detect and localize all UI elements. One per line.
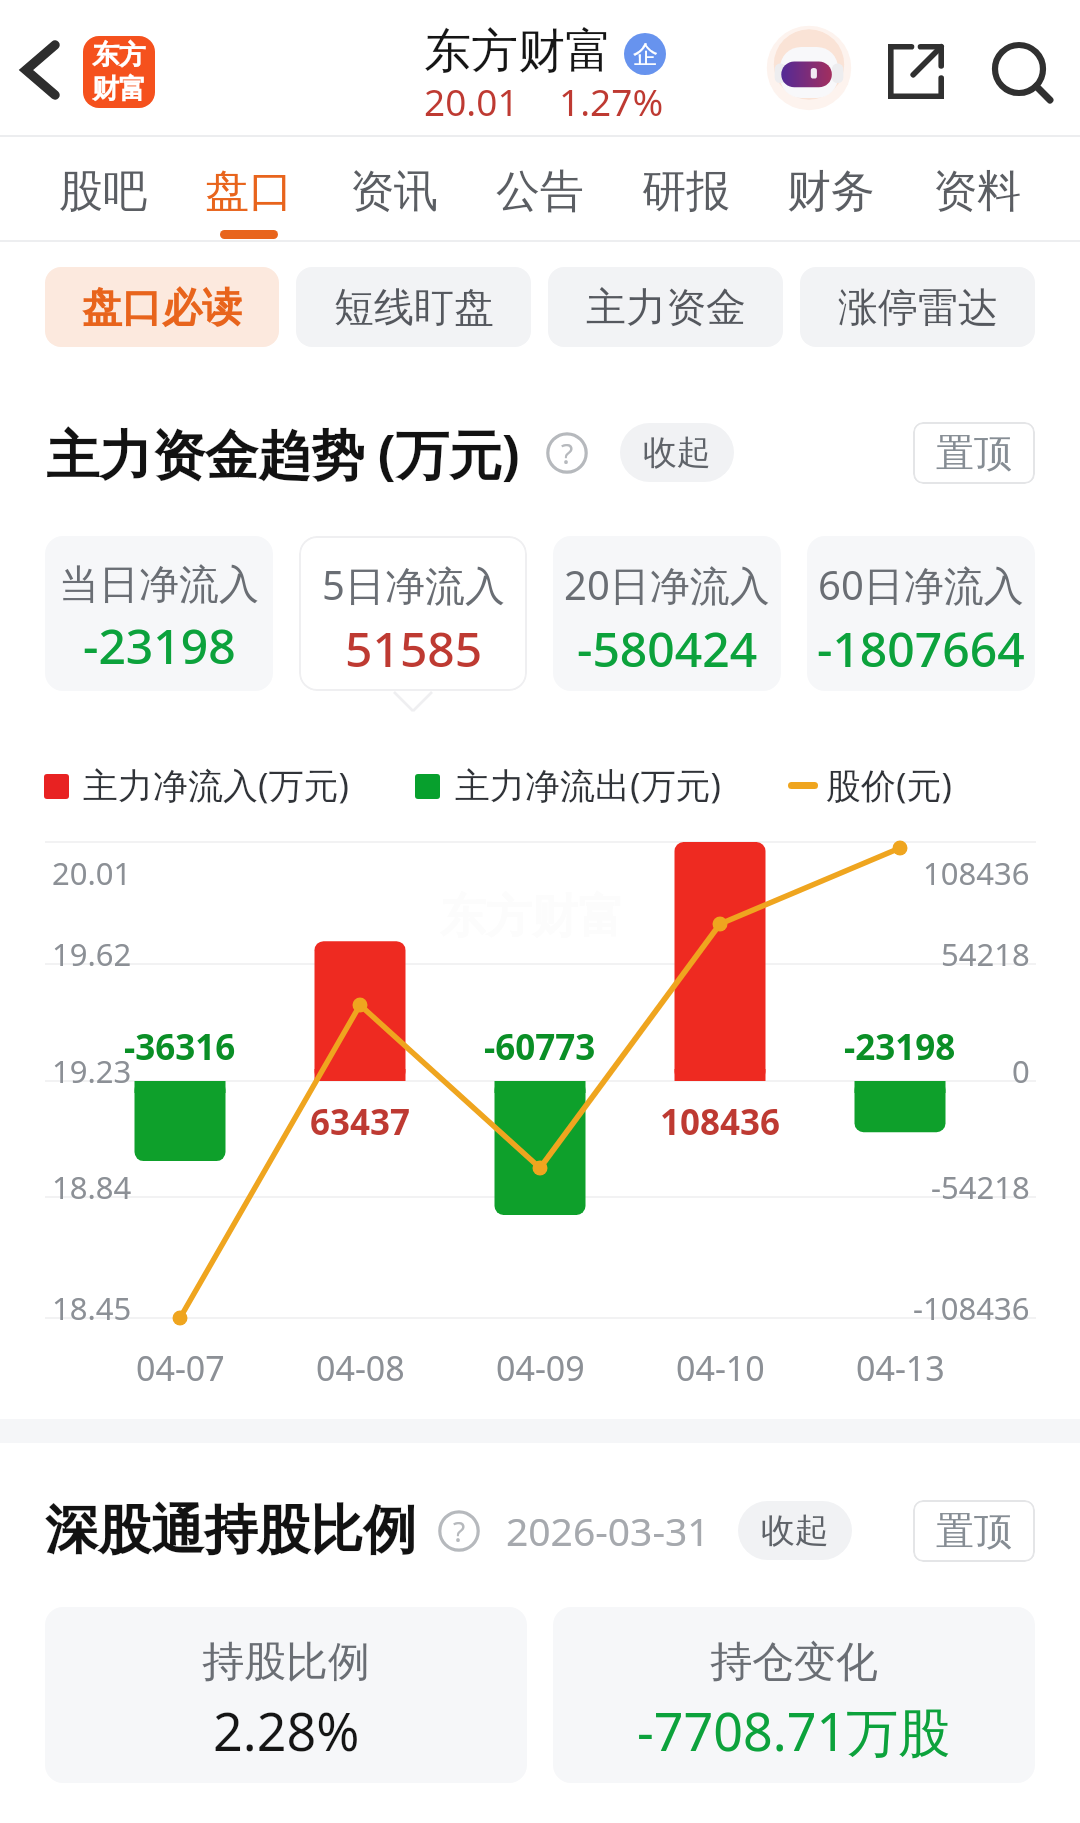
staticText: 19.62	[52, 933, 132, 975]
staticText: 63437	[310, 1098, 411, 1146]
staticText: 108436	[923, 852, 1030, 894]
button[interactable]: Share	[888, 44, 944, 99]
staticText: 企	[633, 39, 658, 70]
button[interactable]: 主力资金	[548, 267, 783, 347]
staticText: 20日净流入	[564, 557, 770, 612]
button[interactable]: 盘口必读	[45, 267, 279, 347]
staticText: -60773	[484, 1023, 596, 1071]
staticText: 公告	[496, 164, 584, 219]
button[interactable]: 财务	[778, 137, 884, 242]
staticText: 04-10	[676, 1345, 765, 1391]
staticText: 置顶	[936, 429, 1012, 477]
staticText: 0	[1012, 1050, 1030, 1092]
staticText: 04-13	[856, 1345, 945, 1391]
staticText: 持仓变化	[710, 1636, 878, 1689]
staticText: 收起	[761, 1509, 829, 1552]
button[interactable]: Help	[438, 1510, 480, 1552]
button[interactable]: 持仓变化	[553, 1607, 1035, 1783]
staticText: -108436	[913, 1287, 1030, 1329]
staticText: 资料	[933, 164, 1021, 219]
button[interactable]: 置顶	[913, 1500, 1035, 1562]
staticText: 研报	[642, 164, 730, 219]
staticText: 东方财富	[424, 22, 612, 81]
staticText: 持股比例	[202, 1636, 370, 1689]
button[interactable]: 资料	[924, 137, 1030, 242]
staticText: 东方	[92, 38, 146, 72]
button[interactable]: East Money logo	[83, 36, 155, 108]
staticText: 置顶	[936, 1507, 1012, 1555]
staticText: 财务	[787, 164, 875, 219]
staticText: 主力资金	[586, 282, 746, 332]
button[interactable]: 置顶	[913, 422, 1035, 484]
staticText: -23198	[83, 613, 236, 678]
button[interactable]: 研报	[633, 137, 739, 242]
button[interactable]: 5日净流入	[299, 536, 527, 691]
button[interactable]: 盘口	[196, 137, 302, 242]
staticText: -7708.71万股	[637, 1695, 951, 1766]
staticText: 20.01	[52, 852, 132, 894]
button[interactable]: 涨停雷达	[800, 267, 1035, 347]
staticText: 主力净流出(万元)	[455, 761, 722, 809]
staticText: 04-08	[316, 1345, 405, 1391]
staticText: 1.27%	[559, 76, 664, 126]
staticText: 主力净流入(万元)	[83, 761, 350, 809]
staticText: 当日净流入	[59, 559, 259, 609]
staticText: -1807664	[817, 616, 1025, 681]
button[interactable]: 20日净流入	[553, 536, 781, 691]
staticText: 涨停雷达	[838, 282, 998, 332]
staticText: 04-07	[136, 1345, 225, 1391]
staticText: 资讯	[350, 164, 438, 219]
staticText: -54218	[931, 1166, 1030, 1208]
staticText: ?	[561, 434, 574, 472]
button[interactable]: 收起	[738, 1501, 852, 1560]
staticText: 短线盯盘	[334, 282, 494, 332]
staticText: 股吧	[59, 164, 147, 219]
staticText: 108436	[660, 1098, 781, 1146]
staticText: 2.28%	[213, 1695, 360, 1766]
staticText: 54218	[941, 933, 1030, 975]
staticText: 18.84	[52, 1166, 132, 1208]
staticText: 深股通持股比例	[45, 1497, 416, 1564]
staticText: 收起	[643, 431, 711, 474]
button[interactable]: 当日净流入	[45, 536, 273, 691]
staticText: 盘口必读	[82, 282, 242, 332]
staticText: 20.01	[424, 76, 519, 126]
staticText: 财富	[92, 72, 146, 106]
button[interactable]: 持股比例	[45, 1607, 527, 1783]
staticText: 18.45	[52, 1287, 132, 1329]
button[interactable]: AI assistant	[765, 24, 853, 112]
staticText: 5日净流入	[322, 557, 505, 612]
staticText: 主力资金趋势 (万元)	[46, 417, 520, 489]
staticText: -23198	[844, 1023, 956, 1071]
staticText: 04-09	[496, 1345, 585, 1391]
button[interactable]: 资讯	[341, 137, 447, 242]
staticText: 51585	[345, 616, 483, 681]
button[interactable]: 收起	[620, 423, 734, 482]
staticText: 盘口	[205, 164, 293, 219]
staticText: ?	[453, 1512, 466, 1550]
staticText: 股价(元)	[826, 761, 953, 809]
button[interactable]: 股吧	[50, 137, 156, 242]
button[interactable]: 60日净流入	[807, 536, 1035, 691]
staticText: 60日净流入	[818, 557, 1024, 612]
button[interactable]: 公告	[487, 137, 593, 242]
staticText: -580424	[577, 616, 758, 681]
button[interactable]: 短线盯盘	[296, 267, 531, 347]
button[interactable]: Search	[995, 45, 1055, 105]
button[interactable]: Back	[0, 20, 80, 120]
staticText: 2026-03-31	[506, 1504, 710, 1557]
button[interactable]: Help	[546, 432, 588, 474]
staticText: 19.23	[52, 1050, 132, 1092]
staticText: -36316	[124, 1023, 236, 1071]
